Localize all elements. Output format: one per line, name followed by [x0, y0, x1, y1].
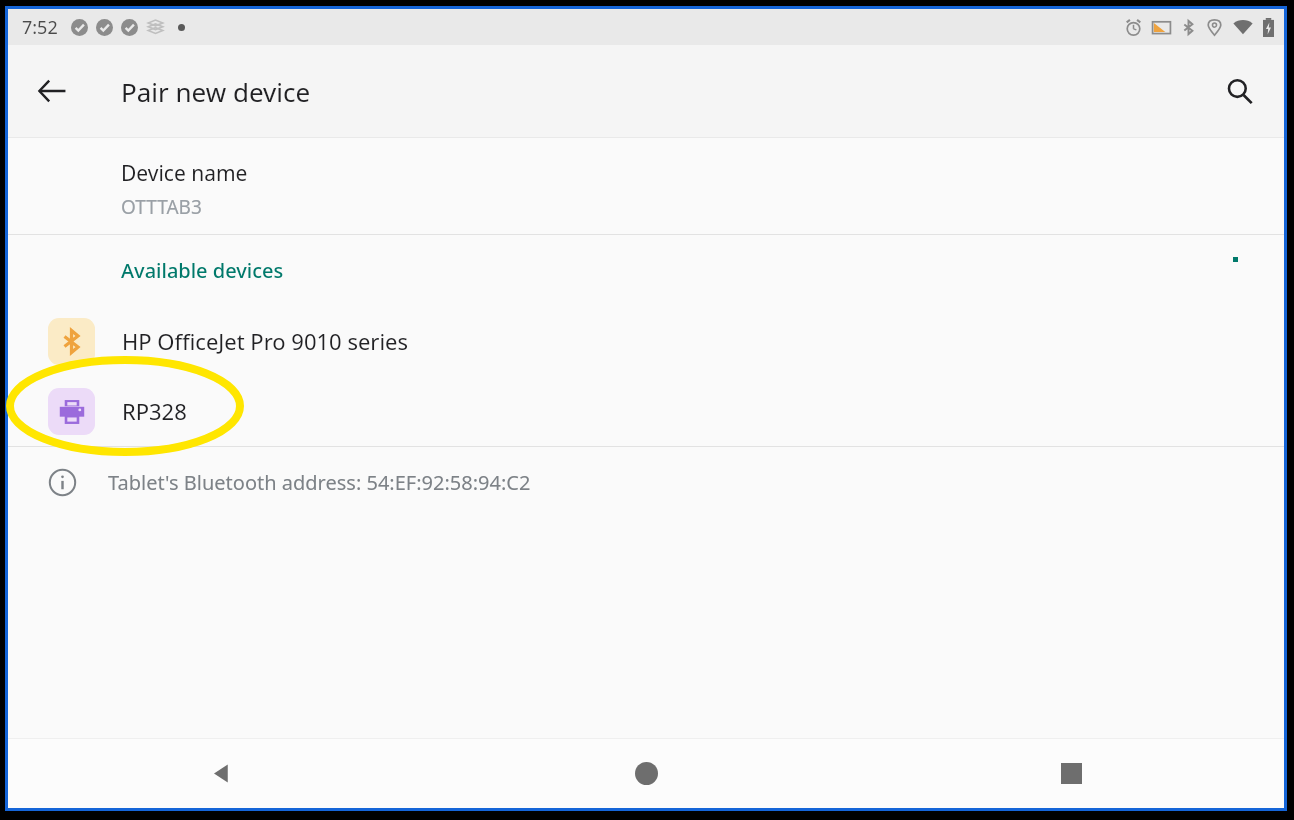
staticText: OTTTAB3 — [121, 194, 202, 220]
button[interactable]: Back — [8, 738, 434, 808]
button[interactable]: Device name — [8, 138, 1284, 234]
button[interactable]: Home — [434, 738, 859, 808]
staticText: RP328 — [122, 396, 187, 426]
staticText: Available devices — [121, 257, 284, 284]
button[interactable]: Search — [1210, 62, 1268, 120]
staticText: Pair new device — [121, 74, 311, 109]
button[interactable]: Back — [23, 62, 81, 120]
button[interactable]: HP OfficeJet Pro 9010 series — [8, 306, 1284, 376]
staticText: Tablet's Bluetooth address: 54:EF:92:58:… — [108, 469, 531, 496]
staticText: Device name — [121, 159, 248, 188]
staticText: 7:52 — [22, 15, 58, 40]
button[interactable]: RP328 — [8, 376, 1284, 446]
button[interactable]: Recents — [859, 738, 1284, 808]
staticText: HP OfficeJet Pro 9010 series — [122, 326, 409, 356]
